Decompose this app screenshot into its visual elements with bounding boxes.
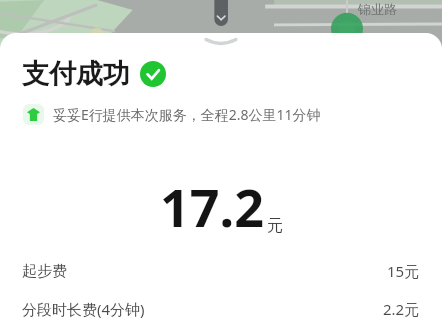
staticText: 分段时长费(4分钟) — [22, 299, 145, 319]
staticText: 起步费 — [22, 262, 67, 281]
button[interactable]: 分段时长费(4分钟) — [0, 297, 442, 321]
button[interactable]: 支付成功 — [22, 57, 166, 91]
staticText: 支付成功 — [22, 57, 130, 91]
staticText: 15元 — [387, 261, 420, 281]
staticText: 锦业路 — [358, 1, 397, 17]
staticText: 17.2 — [160, 171, 264, 242]
staticText: 元 — [267, 216, 283, 236]
staticText: 妥妥E行提供本次服务，全程2.8公里11分钟 — [53, 105, 321, 124]
staticText: 2.2元 — [383, 299, 420, 319]
button[interactable]: 妥妥E行提供本次服务，全程2.8公里11分钟 — [23, 104, 321, 125]
button[interactable]: Collapse — [0, 33, 442, 51]
button[interactable]: 起步费 — [0, 259, 442, 283]
